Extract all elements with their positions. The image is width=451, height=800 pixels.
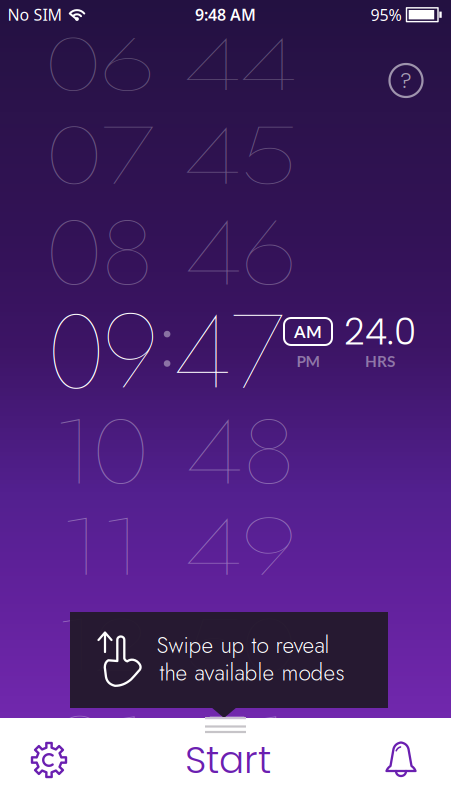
staticText: 01 xyxy=(51,667,149,800)
button[interactable] xyxy=(379,737,423,781)
button[interactable]: AM xyxy=(284,318,332,345)
button[interactable]: Start xyxy=(185,734,271,786)
staticText: 12 xyxy=(53,570,147,720)
staticText: HRS xyxy=(365,352,395,370)
staticText: AM xyxy=(294,321,322,341)
staticText: 07 xyxy=(45,81,154,231)
staticText: No SIM xyxy=(7,4,62,25)
staticText: Start xyxy=(185,734,271,786)
staticText: 48 xyxy=(186,377,296,527)
staticText: PM xyxy=(296,352,319,370)
staticText: Swipe up to reveal xyxy=(156,629,329,661)
staticText: ? xyxy=(400,66,411,95)
staticText: 24.0 xyxy=(344,307,416,357)
button[interactable] xyxy=(27,738,71,782)
staticText: 47 xyxy=(174,276,284,427)
staticText: the available modes xyxy=(159,656,344,689)
staticText: 49 xyxy=(185,472,297,622)
staticText: 06 xyxy=(44,0,155,139)
staticText: 95% xyxy=(370,4,401,25)
staticText: 9:48 AM xyxy=(195,4,256,25)
button[interactable]: ? xyxy=(389,64,422,97)
staticText: 10 xyxy=(51,377,149,527)
staticText: 08 xyxy=(45,178,154,328)
staticText: 44 xyxy=(184,0,298,139)
staticText: 46 xyxy=(185,178,297,328)
staticText: 51 xyxy=(191,667,290,800)
staticText: 11 xyxy=(58,472,142,622)
staticText: 09 xyxy=(47,276,158,427)
staticText: 50 xyxy=(184,570,297,720)
staticText: 45 xyxy=(184,81,298,231)
